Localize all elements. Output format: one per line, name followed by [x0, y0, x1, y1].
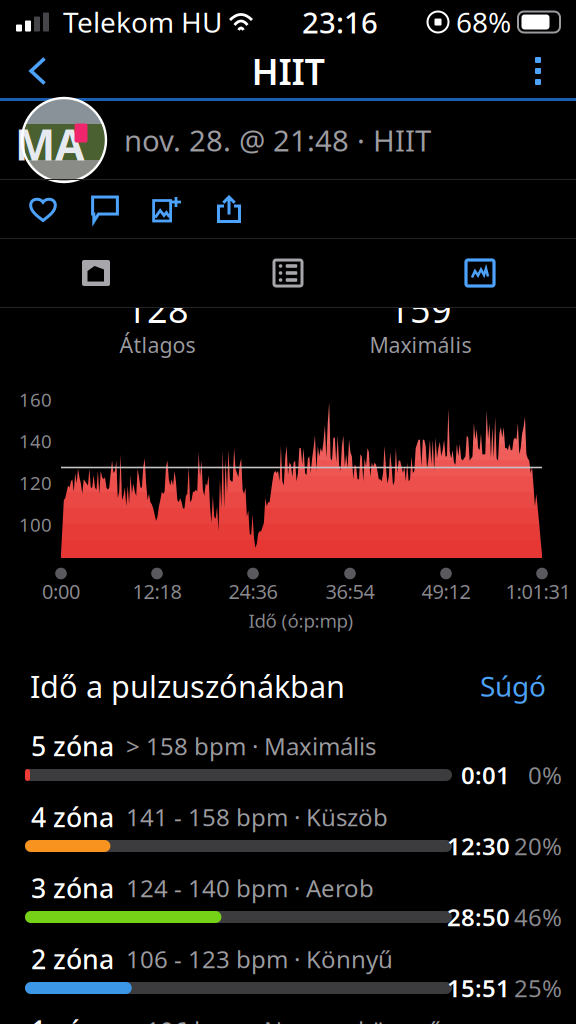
- staticText: 36:54: [325, 578, 374, 605]
- staticText: 140: [19, 429, 52, 453]
- staticText: 15:51: [447, 972, 510, 1004]
- button[interactable]: 1 zóna: [0, 1014, 576, 1024]
- staticText: Átlagos: [119, 331, 195, 359]
- staticText: nov. 28. @ 21:48 · HIIT: [124, 120, 431, 159]
- button[interactable]: Map: [0, 239, 192, 307]
- staticText: Idő a pulzuszónákban: [30, 666, 345, 706]
- staticText: 3 zóna: [31, 870, 114, 906]
- button[interactable]: Like: [12, 180, 74, 238]
- staticText: Telekom HU: [49, 3, 229, 41]
- staticText: 128: [126, 285, 189, 333]
- staticText: 0:00: [42, 578, 80, 605]
- staticText: 1 zóna: [31, 1012, 114, 1024]
- button[interactable]: Splits: [192, 239, 384, 307]
- staticText: 12:18: [132, 578, 181, 605]
- staticText: Idő (ó:p:mp): [248, 608, 353, 633]
- button[interactable]: nov. 28. @ 21:48 · HIIT: [124, 120, 431, 159]
- staticText: 28:50: [447, 901, 510, 933]
- staticText: 49:12: [421, 578, 470, 605]
- staticText: HIIT: [251, 47, 324, 95]
- staticText: 159: [389, 285, 452, 333]
- staticText: 0%: [528, 759, 562, 791]
- button[interactable]: Back: [10, 44, 66, 98]
- staticText: MA: [15, 116, 85, 172]
- staticText: > 158 bpm · Maximális: [126, 730, 376, 762]
- staticText: 25%: [514, 972, 562, 1004]
- staticText: 12:30: [447, 830, 510, 862]
- staticText: 4 zóna: [31, 799, 114, 835]
- staticText: 5 zóna: [31, 728, 114, 764]
- staticText: 46%: [514, 901, 562, 933]
- staticText: 1:01:31: [505, 578, 570, 605]
- button[interactable]: Súgó: [480, 667, 546, 705]
- button[interactable]: Analysis: [384, 239, 576, 307]
- staticText: Súgó: [480, 667, 546, 705]
- button[interactable]: 4 zóna: [0, 801, 576, 872]
- staticText: 2 zóna: [31, 941, 114, 977]
- staticText: 160: [19, 387, 52, 412]
- button[interactable]: 5 zóna: [0, 730, 576, 801]
- button[interactable]: Comment: [74, 180, 136, 238]
- staticText: 124 - 140 bpm · Aerob: [126, 872, 374, 904]
- button[interactable]: Profile: [22, 98, 106, 182]
- staticText: 120: [19, 470, 52, 495]
- staticText: < 106 bpm · Nagyon könnyű: [126, 1014, 443, 1024]
- staticText: 68%: [449, 3, 518, 41]
- button[interactable]: 3 zóna: [0, 872, 576, 943]
- button[interactable]: Share: [198, 180, 260, 238]
- staticText: 100: [19, 512, 52, 537]
- button[interactable]: 2 zóna: [0, 943, 576, 1014]
- staticText: 23:16: [302, 2, 378, 41]
- staticText: 24:36: [228, 578, 277, 605]
- staticText: 106 - 123 bpm · Könnyű: [126, 943, 393, 975]
- staticText: 20%: [514, 830, 562, 862]
- button[interactable]: More options: [510, 44, 566, 98]
- staticText: 141 - 158 bpm · Küszöb: [126, 801, 388, 833]
- button[interactable]: Add photo: [136, 180, 198, 238]
- staticText: Maximális: [369, 331, 471, 359]
- staticText: 0:01: [461, 759, 510, 791]
